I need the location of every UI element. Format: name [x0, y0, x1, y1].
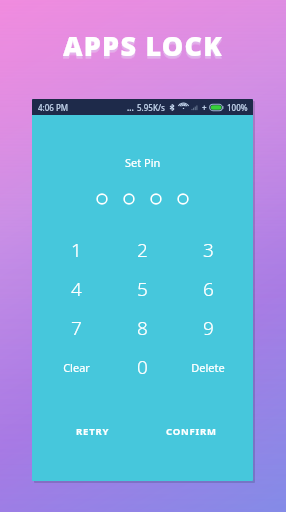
button[interactable]: 6 — [175, 270, 241, 308]
staticText: 100% — [227, 102, 248, 113]
staticText: APPS LOCK — [0, 30, 286, 67]
button[interactable]: Clear — [44, 348, 109, 386]
staticText: 2 — [137, 237, 148, 263]
staticText: 5 — [137, 276, 148, 302]
button[interactable]: RETRY — [44, 418, 142, 444]
button[interactable]: Set Pin — [32, 155, 253, 170]
staticText: Set Pin — [125, 155, 161, 170]
staticText: APPS LOCK — [0, 27, 286, 64]
button[interactable]: 2 — [109, 231, 175, 269]
button[interactable]: 7 — [44, 309, 109, 347]
staticText: RETRY — [76, 425, 110, 438]
staticText: 5.95K/s — [137, 102, 165, 113]
staticText: 6 — [203, 276, 214, 302]
button[interactable]: 3 — [175, 231, 241, 269]
staticText: 1 — [71, 237, 82, 263]
staticText: 7 — [71, 315, 82, 341]
button[interactable]: 1 — [44, 231, 109, 269]
staticText: APPS LOCK — [0, 29, 286, 66]
button[interactable]: 9 — [175, 309, 241, 347]
staticText: 3 — [203, 237, 214, 263]
staticText: Delete — [191, 360, 225, 375]
staticText: 8 — [137, 315, 148, 341]
button[interactable]: 0 — [109, 348, 175, 386]
button[interactable]: CONFIRM — [142, 418, 241, 444]
staticText: 9 — [203, 315, 214, 341]
staticText: 4:06 PM — [38, 102, 69, 113]
staticText: CONFIRM — [166, 425, 217, 438]
button[interactable]: 8 — [109, 309, 175, 347]
staticText: Clear — [63, 360, 90, 375]
staticText: ... — [127, 102, 134, 113]
staticText: 4 — [71, 276, 82, 302]
button[interactable]: 4 — [44, 270, 109, 308]
staticText: 0 — [137, 354, 148, 380]
button[interactable]: 5 — [109, 270, 175, 308]
button[interactable]: Delete — [175, 348, 241, 386]
staticText: + — [202, 102, 207, 113]
